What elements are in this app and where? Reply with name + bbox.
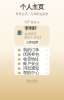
staticText: › [46,46,47,53]
button[interactable]: ◆ [14,70,49,75]
staticText: 收货地址 [23,56,39,62]
staticText: › [46,69,47,76]
staticText: ◆ [17,52,20,57]
staticText: 优惠券包 [23,52,39,57]
staticText: ◆ [17,56,20,62]
button[interactable]: ◆ [14,66,49,70]
staticText: 会员编号 8821 0934 [24,32,41,40]
staticText: 李明轩 [24,26,36,31]
staticText: 退出登录 [26,79,38,83]
staticText: VIP 尊享卡 [24,20,39,24]
staticText: 个人主页 [20,3,44,11]
staticText: 👤 [17,30,22,35]
staticText: 账户安全 [23,61,39,66]
staticText: ◆ [17,61,20,66]
staticText: 立即续费 [26,40,38,44]
staticText: › [46,60,47,67]
staticText: › [46,51,47,58]
button[interactable]: 立即续费 [24,40,40,45]
button[interactable]: ◆ [14,47,49,52]
staticText: ◆ [17,47,20,52]
staticText: ◆ [17,65,20,71]
staticText: 我的订单 [23,47,39,52]
staticText: 帮助中心 [23,70,39,75]
button[interactable]: ◆ [14,57,49,61]
button[interactable]: ◆ [14,52,49,57]
staticText: › [46,65,47,71]
staticText: › [46,56,47,62]
staticText: ◆ [17,70,20,75]
staticText: 尊享会员 · 专属权益服务 [15,12,48,16]
staticText: 消息通知 [23,65,39,71]
button[interactable]: ◆ [14,61,49,66]
